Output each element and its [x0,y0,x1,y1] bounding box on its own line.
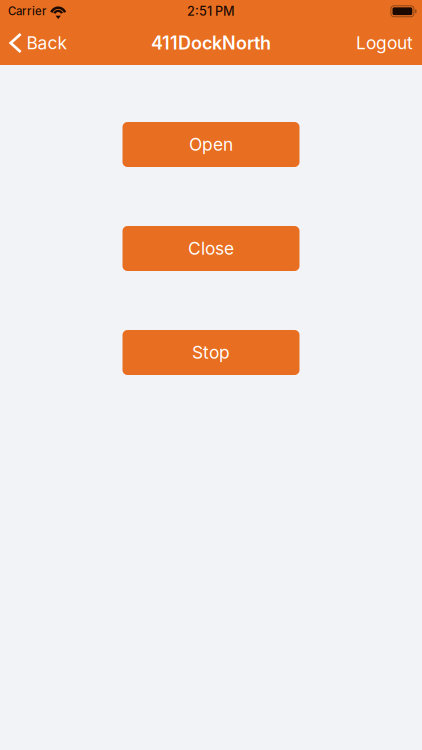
staticText: Carrier [8,4,46,18]
staticText: Close [188,238,234,259]
staticText: 2:51 PM [187,4,235,19]
staticText: 411DockNorth [151,32,271,54]
button[interactable]: Open [122,122,299,167]
button[interactable]: Stop [122,330,299,375]
button[interactable]: Logout [343,17,422,68]
staticText: Stop [192,342,230,363]
button[interactable]: Close [122,226,299,271]
staticText: Open [189,134,233,155]
staticText: Back [27,32,68,53]
button[interactable]: Back [0,21,76,64]
staticText: Logout [356,32,413,53]
